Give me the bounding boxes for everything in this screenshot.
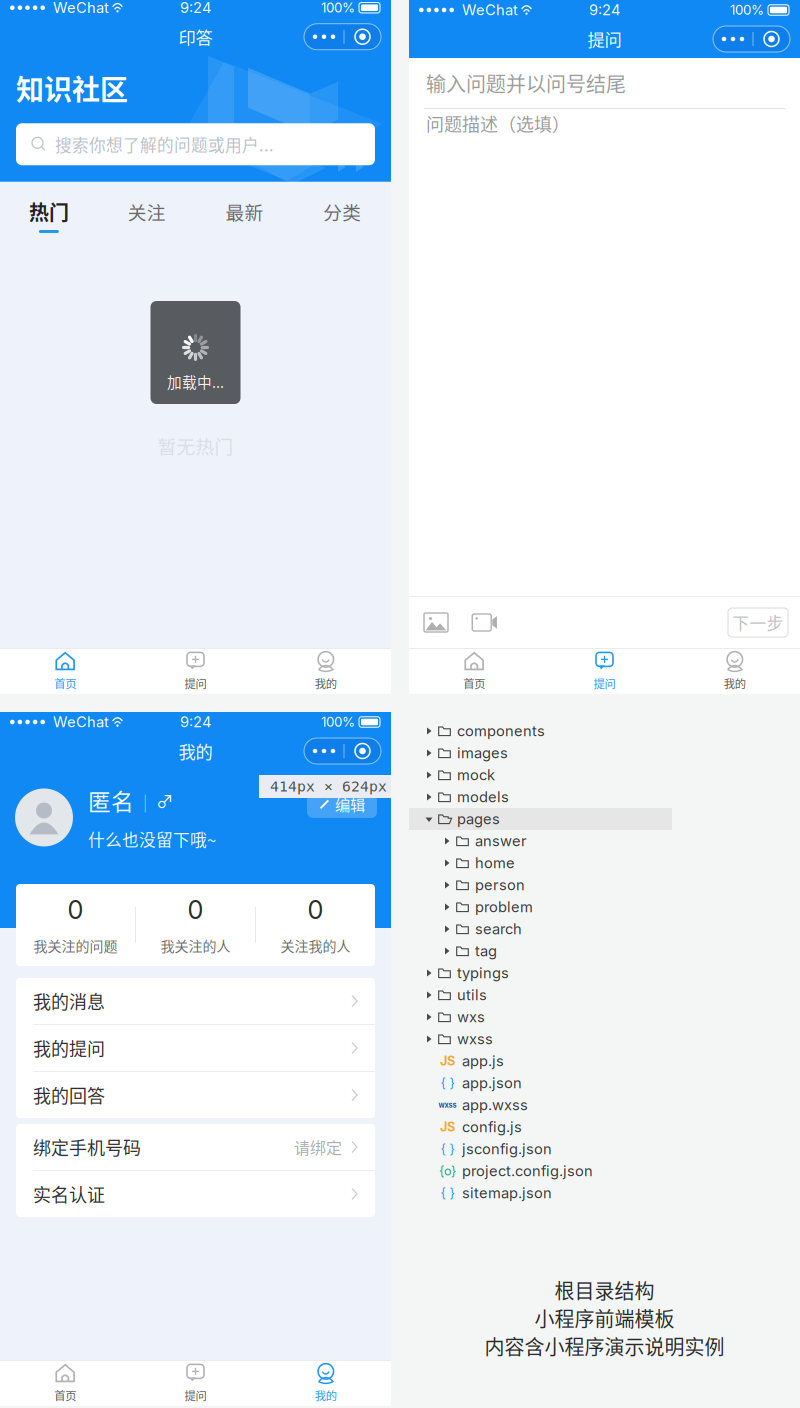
button[interactable]: 下一步 <box>728 608 788 637</box>
staticText: 提问 <box>587 26 621 52</box>
button[interactable]: More <box>713 26 790 52</box>
staticText: 问题描述（选填） <box>426 110 570 137</box>
button[interactable]: More <box>304 738 381 764</box>
staticText: WeChat <box>53 713 109 731</box>
button[interactable]: Add video <box>472 613 498 632</box>
staticText: app.json <box>462 1074 522 1092</box>
staticText: { } <box>440 1075 454 1091</box>
staticText: 绑定手机号码 <box>33 1134 141 1160</box>
staticText: | <box>143 789 147 812</box>
button[interactable]: 我的 <box>261 1361 391 1406</box>
staticText: utils <box>457 986 487 1004</box>
staticText: 编辑 <box>335 793 365 815</box>
button[interactable]: 我的 <box>261 649 391 694</box>
staticText: 热门 <box>29 197 69 226</box>
button[interactable]: 提问 <box>539 649 670 694</box>
button[interactable]: 0 <box>136 884 255 966</box>
button[interactable]: 我的消息 <box>16 978 375 1025</box>
button[interactable]: 分类 <box>293 184 391 240</box>
staticText: 414px × 624px <box>270 778 387 795</box>
staticText: 根目录结构 <box>554 1275 654 1304</box>
staticText: search <box>475 920 522 938</box>
staticText: 实名认证 <box>33 1181 105 1207</box>
button[interactable]: 提问 <box>130 1361 261 1406</box>
staticText: 分类 <box>323 198 361 225</box>
staticText: 提问 <box>184 675 206 692</box>
staticText: 100% <box>321 0 355 16</box>
staticText: 0 <box>67 894 83 925</box>
button[interactable]: 绑定手机号码 <box>16 1124 375 1171</box>
button[interactable]: 热门 <box>0 184 98 240</box>
staticText: 关注我的人 <box>280 935 350 955</box>
button[interactable]: Add image <box>424 613 448 632</box>
staticText: WeChat <box>462 1 518 19</box>
staticText: 100% <box>730 2 764 18</box>
staticText: 首页 <box>463 675 485 692</box>
button[interactable]: 我的回答 <box>16 1072 375 1118</box>
staticText: 我的消息 <box>33 988 105 1014</box>
button[interactable]: 编辑 <box>307 790 377 818</box>
staticText: 知识社区 <box>16 68 128 108</box>
button[interactable]: 首页 <box>0 1361 130 1406</box>
staticText: wxss <box>457 1030 493 1048</box>
button[interactable]: 首页 <box>0 649 130 694</box>
button[interactable]: 搜索你想了解的问题或用户... <box>16 123 375 165</box>
button[interactable]: 我的提问 <box>16 1025 375 1072</box>
button[interactable]: 首页 <box>409 649 539 694</box>
staticText: home <box>475 854 515 872</box>
staticText: 加载中... <box>167 371 224 392</box>
staticText: 100% <box>321 714 355 730</box>
staticText: 首页 <box>54 1387 76 1404</box>
staticText: 印答 <box>178 24 212 49</box>
button[interactable]: 实名认证 <box>16 1171 375 1217</box>
staticText: 请绑定 <box>294 1135 342 1159</box>
staticText: pages <box>457 810 500 828</box>
staticText: models <box>457 788 509 806</box>
staticText: typings <box>457 964 509 982</box>
staticText: tag <box>475 942 497 960</box>
staticText: components <box>457 722 545 740</box>
button[interactable]: 提问 <box>130 649 261 694</box>
button[interactable]: 0 <box>256 884 375 966</box>
staticText: answer <box>475 832 527 850</box>
staticText: {o} <box>439 1163 456 1179</box>
staticText: mock <box>457 766 495 784</box>
staticText: 关注 <box>128 198 166 225</box>
staticText: person <box>475 876 525 894</box>
staticText: app.wxss <box>462 1096 528 1114</box>
staticText: images <box>457 744 508 762</box>
staticText: { } <box>440 1141 454 1157</box>
staticText: problem <box>475 898 533 916</box>
staticText: 输入问题并以问号结尾 <box>426 68 626 97</box>
staticText: 0 <box>307 894 323 925</box>
staticText: 9:24 <box>180 0 211 17</box>
staticText: 我的 <box>724 675 746 692</box>
staticText: ♂ <box>156 788 173 813</box>
staticText: 我关注的问题 <box>33 935 117 955</box>
button[interactable]: More <box>304 24 381 50</box>
button[interactable]: 最新 <box>195 184 293 240</box>
button[interactable]: 0 <box>16 884 135 966</box>
staticText: 我关注的人 <box>160 935 230 955</box>
staticText: 我的回答 <box>33 1082 105 1108</box>
staticText: config.js <box>462 1118 522 1136</box>
staticText: 最新 <box>225 198 263 225</box>
staticText: WeChat <box>53 0 109 17</box>
staticText: 9:24 <box>589 1 620 19</box>
staticText: jsconfig.json <box>462 1140 552 1158</box>
staticText: project.config.json <box>462 1162 593 1180</box>
button[interactable]: 我的 <box>670 649 800 694</box>
staticText: 9:24 <box>180 713 211 731</box>
staticText: 搜索你想了解的问题或用户... <box>55 132 274 156</box>
staticText: 我的 <box>178 738 212 764</box>
staticText: 匿名 <box>88 784 134 817</box>
staticText: 提问 <box>184 1387 206 1404</box>
staticText: 小程序前端模板 <box>534 1303 674 1332</box>
staticText: 我的 <box>315 675 337 692</box>
staticText: wxss <box>438 1101 456 1109</box>
staticText: app.js <box>462 1052 504 1070</box>
staticText: { } <box>440 1185 454 1201</box>
button[interactable]: 关注 <box>98 184 196 240</box>
staticText: 我的提问 <box>33 1035 105 1061</box>
staticText: JS <box>440 1119 455 1135</box>
